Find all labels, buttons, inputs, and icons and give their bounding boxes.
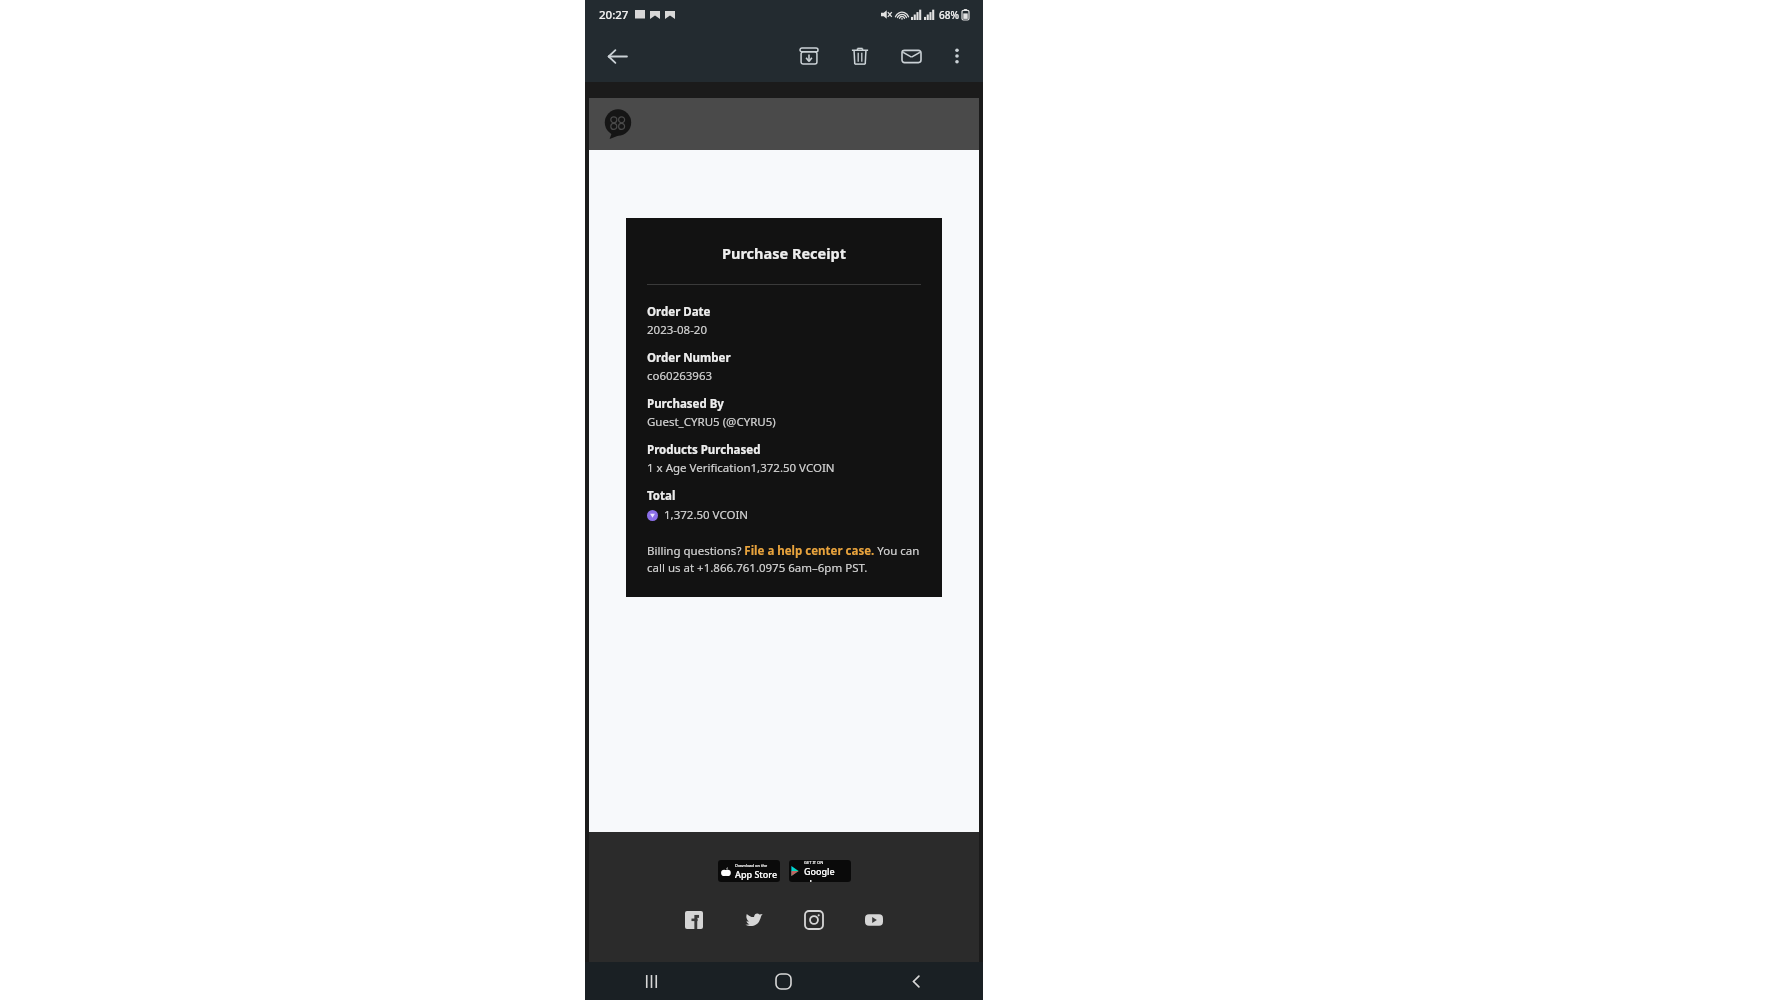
button[interactable]: Home	[717, 962, 850, 1000]
staticText: Products Purchased	[647, 442, 761, 458]
staticText: co60263963	[647, 368, 713, 384]
staticText: Order Date	[647, 304, 711, 320]
button[interactable]: Mark unread	[891, 36, 931, 76]
button[interactable]: Get it on Google Play	[789, 860, 851, 882]
staticText: 2023-08-20	[647, 322, 708, 338]
button[interactable]: Billing questions? File a help center ca…	[647, 543, 921, 575]
staticText: 20:27	[599, 7, 629, 23]
button[interactable]: Back	[850, 962, 983, 1000]
staticText: Order Number	[647, 350, 731, 366]
button[interactable]: YouTube	[860, 906, 888, 934]
staticText: Purchase Receipt	[626, 243, 942, 263]
staticText: 68%	[939, 8, 959, 22]
staticText: Google play	[804, 865, 851, 882]
staticText: App Store	[735, 868, 778, 880]
staticText: GET IT ON	[804, 860, 824, 865]
button[interactable]: Twitter	[740, 906, 768, 934]
staticText: Guest_CYRU5 (@CYRU5)	[647, 414, 776, 430]
staticText: 1 x Age Verification1,372.50 VCOIN	[647, 460, 835, 476]
button[interactable]: Instagram	[800, 906, 828, 934]
button[interactable]: Archive	[789, 36, 829, 76]
staticText: Purchased By	[647, 396, 724, 412]
button[interactable]: More options	[937, 36, 977, 76]
button[interactable]: Recents	[585, 962, 717, 1000]
button[interactable]: Delete	[840, 36, 880, 76]
button[interactable]: Back	[597, 36, 637, 76]
staticText: 1,372.50 VCOIN	[664, 507, 749, 523]
staticText: Total	[647, 488, 676, 504]
button[interactable]: Facebook	[680, 906, 708, 934]
button[interactable]: Download on the App Store	[718, 860, 780, 882]
staticText: Download on the	[735, 863, 768, 868]
